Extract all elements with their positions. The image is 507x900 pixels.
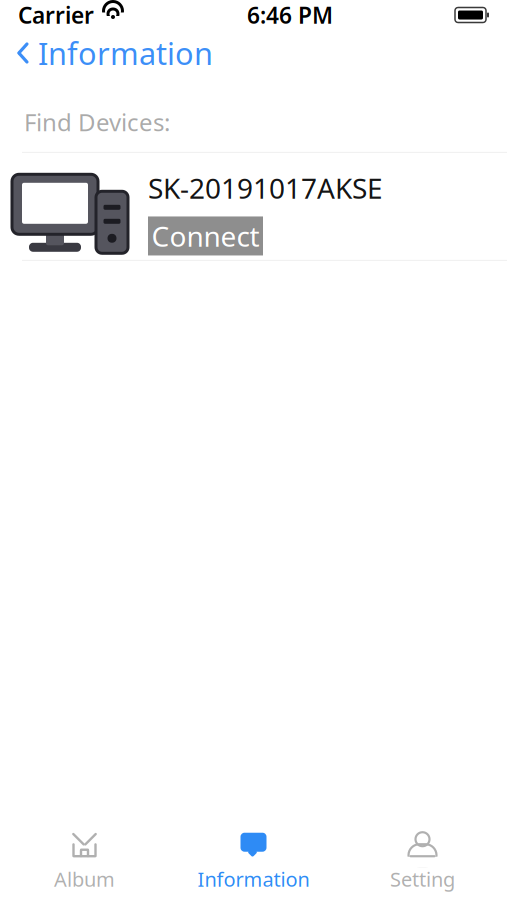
button[interactable]: Information (0, 27, 213, 79)
staticText: Carrier (18, 0, 94, 30)
staticText: Find Devices: (24, 106, 170, 138)
staticText: Setting (390, 866, 455, 892)
staticText: Connect (151, 217, 259, 255)
staticText: Information (38, 33, 213, 73)
button[interactable]: Information (169, 824, 338, 900)
staticText: 6:46 PM (247, 0, 333, 30)
button[interactable]: Album (0, 824, 169, 900)
staticText: Album (54, 866, 115, 892)
button[interactable]: Setting (338, 824, 507, 900)
button[interactable]: Connect (148, 216, 263, 255)
staticText: SK-20191017AKSE (148, 169, 383, 206)
staticText: Information (197, 866, 309, 892)
